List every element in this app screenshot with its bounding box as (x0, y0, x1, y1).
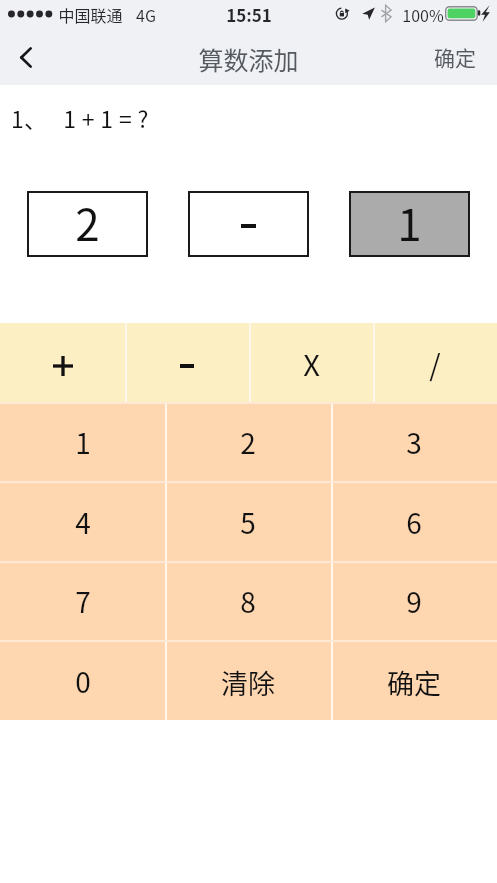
staticText: 1 + 1 = ? (63, 101, 149, 134)
staticText: 1、 (11, 101, 47, 134)
button[interactable]: / (373, 323, 497, 402)
button[interactable]: 9 (331, 561, 497, 640)
staticText: 7 (75, 581, 91, 622)
staticText: 算数添加 (198, 41, 299, 77)
button[interactable]: Minus (125, 323, 249, 402)
staticText: / (429, 342, 441, 384)
staticText: 1 (397, 190, 422, 254)
button[interactable]: 2 (27, 191, 148, 257)
staticText: X (303, 342, 320, 384)
button[interactable]: Back (0, 40, 52, 74)
button[interactable]: 1 (0, 402, 165, 481)
button[interactable]: 确定 (331, 640, 497, 720)
staticText: 8 (240, 581, 256, 622)
button[interactable]: 2 (165, 402, 331, 481)
button[interactable]: Plus (0, 323, 125, 402)
button[interactable]: 3 (331, 402, 497, 481)
staticText: 确定 (434, 42, 476, 72)
button[interactable]: 清除 (165, 640, 331, 720)
staticText: 3 (406, 422, 422, 463)
button[interactable]: 6 (331, 481, 497, 561)
button[interactable]: Operator minus (188, 191, 309, 257)
button[interactable]: 1 (349, 191, 470, 257)
button[interactable]: 8 (165, 561, 331, 640)
staticText: 15:51 (226, 2, 272, 27)
button[interactable]: 7 (0, 561, 165, 640)
staticText: 9 (406, 581, 422, 622)
staticText: 清除 (221, 663, 275, 702)
button[interactable]: 4 (0, 481, 165, 561)
staticText: 4 (75, 502, 91, 543)
staticText: 6 (406, 502, 422, 543)
staticText: 4G (136, 3, 156, 26)
staticText: 1 (75, 422, 91, 463)
staticText: 100% (402, 3, 444, 26)
staticText: 确定 (387, 663, 441, 702)
button[interactable]: 5 (165, 481, 331, 561)
staticText: 0 (75, 661, 91, 702)
button[interactable]: X (249, 323, 373, 402)
staticText: 2 (75, 190, 100, 254)
button[interactable]: 0 (0, 640, 165, 720)
staticText: 2 (240, 422, 256, 463)
staticText: 5 (240, 502, 256, 543)
button[interactable]: 确定 (416, 40, 497, 74)
staticText: 中国联通 (58, 3, 123, 26)
